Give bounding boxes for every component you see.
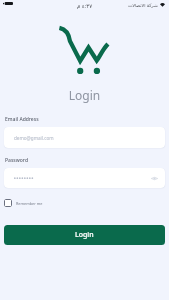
button[interactable]: Login	[4, 225, 165, 245]
staticText: Email Address	[5, 116, 39, 123]
staticText: Password	[5, 157, 28, 164]
staticText: شركة الاتصالات	[128, 2, 158, 8]
button[interactable]: Remember me	[4, 197, 43, 209]
staticText: Login	[0, 87, 169, 103]
button[interactable]: Show password	[4, 168, 165, 188]
staticText: ٤:٣٧ م	[77, 2, 93, 9]
button[interactable]: Show password	[148, 172, 160, 184]
staticText: demo@gmail.com	[14, 135, 54, 141]
staticText: Login	[75, 230, 94, 240]
staticText: Remember me	[16, 201, 43, 206]
button[interactable]: demo@gmail.com	[4, 127, 165, 148]
